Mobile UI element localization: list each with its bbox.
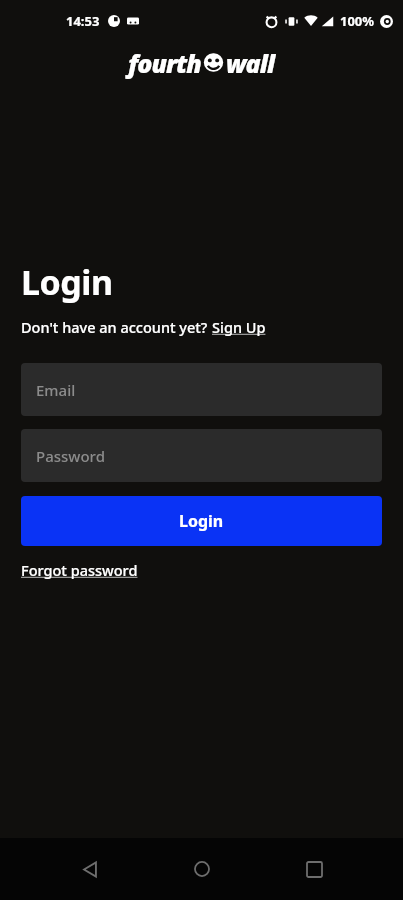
staticText: Email [36, 380, 76, 400]
staticText: 100% [340, 12, 375, 30]
staticText: Password [36, 446, 105, 466]
button[interactable]: Password [21, 429, 382, 482]
staticText: fourth [128, 46, 201, 80]
staticText: Don't have an account yet? [21, 317, 212, 337]
button[interactable]: Email [21, 363, 382, 416]
button[interactable]: Recent apps [288, 843, 340, 895]
staticText: 14:53 [66, 12, 100, 30]
staticText: wall [226, 46, 275, 80]
button[interactable]: Back [64, 843, 116, 895]
button[interactable]: Home [176, 843, 228, 895]
staticText: Login [21, 259, 113, 305]
staticText: Login [179, 510, 224, 532]
button[interactable]: Sign Up [212, 317, 266, 337]
staticText: Forgot password [21, 560, 138, 580]
button[interactable]: Login [21, 496, 382, 546]
staticText: Sign Up [212, 317, 266, 337]
button[interactable]: Forgot password [21, 560, 138, 580]
